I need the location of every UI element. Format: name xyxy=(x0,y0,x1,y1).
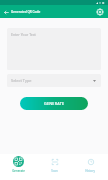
staticText: Scan xyxy=(51,169,58,173)
button[interactable]: Enter Your Text xyxy=(7,28,101,70)
staticText: History xyxy=(85,169,95,173)
button[interactable]: History xyxy=(72,155,108,174)
staticText: Enter Your Text xyxy=(11,32,36,37)
button[interactable]: Generate xyxy=(0,155,36,174)
staticText: Select Type xyxy=(11,78,32,83)
button[interactable]: Scan xyxy=(36,155,72,174)
button[interactable]: GENERATE xyxy=(20,97,88,110)
button[interactable]: Back xyxy=(2,8,10,16)
staticText: GENERATE xyxy=(44,101,65,106)
button[interactable]: Settings xyxy=(94,6,105,17)
button[interactable]: Select Type xyxy=(7,74,101,87)
staticText: Generate xyxy=(12,169,25,173)
staticText: Generated QR Code xyxy=(11,10,41,14)
